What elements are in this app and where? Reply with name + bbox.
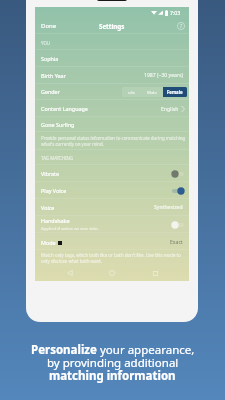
staticText: Applied if active on one side. — [41, 225, 99, 231]
staticText: what's currently on your mind. — [41, 141, 104, 147]
button[interactable] — [35, 199, 189, 216]
staticText: Provide personal status information to c… — [41, 135, 186, 141]
button[interactable]: n/a — [122, 87, 141, 97]
button[interactable]: Male — [141, 87, 163, 97]
staticText: Birth Year — [41, 72, 66, 79]
button[interactable]: Female — [163, 87, 187, 97]
staticText: Personalize — [31, 342, 97, 358]
staticText: Gone Surfing — [41, 121, 75, 128]
staticText: Match only tags, which both like or both… — [41, 252, 181, 258]
staticText: your appearance, — [97, 342, 195, 358]
staticText: Mode — [41, 239, 56, 246]
staticText: Voice — [41, 204, 55, 211]
button[interactable]: Recents — [147, 265, 163, 281]
button[interactable]: Toggle off — [169, 168, 186, 179]
staticText: 1987 (~30 years) — [144, 72, 183, 79]
staticText: Vibrate — [41, 170, 60, 177]
staticText: TAG MATCHING — [41, 155, 74, 161]
button[interactable]: Help — [174, 19, 189, 33]
button[interactable]: Toggle off — [169, 219, 186, 230]
button[interactable]: Home — [104, 265, 120, 281]
staticText: 7:03 — [170, 9, 181, 16]
staticText: by provinding additional — [47, 355, 179, 371]
staticText: Settings — [99, 22, 125, 30]
staticText: only disclose what both want. — [41, 258, 102, 264]
staticText: YOU — [41, 40, 51, 46]
staticText: Play Voice — [41, 187, 67, 194]
button[interactable] — [35, 215, 189, 233]
staticText: Gender — [41, 88, 60, 95]
button[interactable]: Done — [35, 19, 62, 33]
staticText: matching information — [49, 368, 176, 384]
button[interactable]: Toggle on — [169, 185, 186, 196]
staticText: Handshake — [41, 217, 70, 224]
staticText: ? — [180, 23, 183, 30]
button[interactable] — [35, 116, 189, 132]
staticText: Content Language — [41, 105, 88, 112]
button[interactable] — [35, 182, 189, 199]
button[interactable] — [35, 165, 189, 182]
staticText: English — [161, 106, 179, 113]
button[interactable] — [35, 234, 189, 250]
button[interactable] — [35, 100, 189, 117]
button[interactable] — [35, 67, 189, 84]
staticText: Done — [41, 22, 57, 30]
button[interactable] — [35, 50, 189, 67]
button[interactable]: Back — [62, 265, 78, 281]
staticText: n/a — [128, 89, 135, 95]
staticText: Female — [167, 89, 183, 95]
staticText: Male — [147, 89, 157, 95]
staticText: Sophia — [41, 55, 59, 62]
staticText: Synthesized — [154, 204, 183, 211]
staticText: Exact — [170, 239, 183, 246]
